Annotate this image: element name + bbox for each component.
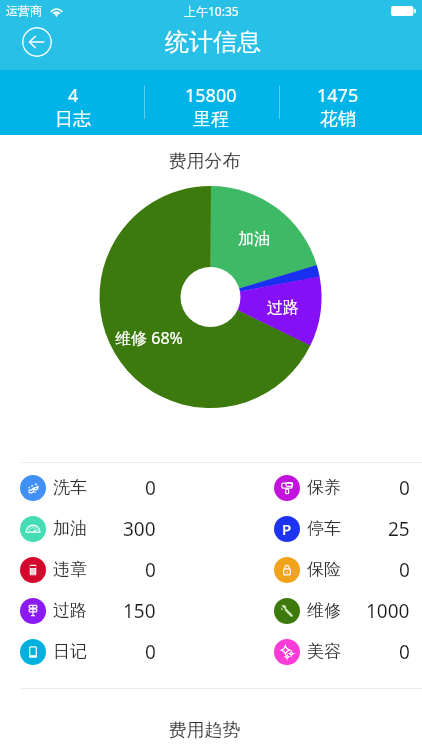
staticText: 运营商 xyxy=(6,3,42,18)
staticText: 0 xyxy=(399,475,410,501)
button[interactable]: Back xyxy=(22,27,52,57)
button[interactable]: 日记 xyxy=(0,631,211,672)
staticText: P xyxy=(282,519,292,539)
staticText: 15800 xyxy=(185,83,237,108)
staticText: 里程 xyxy=(193,108,229,131)
staticText: 过路 xyxy=(233,298,333,318)
staticText: 0 xyxy=(399,639,410,665)
button[interactable]: 维修 xyxy=(211,590,422,631)
staticText: 费用分布 xyxy=(0,150,409,173)
staticText: 1475 xyxy=(317,83,359,108)
staticText: 日记 xyxy=(53,641,87,662)
button[interactable]: 保养 xyxy=(211,467,422,508)
staticText: 0 xyxy=(399,557,410,583)
staticText: 加油 xyxy=(53,518,87,539)
staticText: 维修 xyxy=(307,600,341,621)
staticText: 过路 xyxy=(53,600,87,621)
staticText: 加油 xyxy=(204,229,304,249)
staticText: 统计信息 xyxy=(2,27,422,57)
staticText: 停车 xyxy=(307,518,341,539)
staticText: 4 xyxy=(68,83,79,108)
button[interactable]: 过路 xyxy=(0,590,211,631)
button[interactable]: 加油 xyxy=(0,508,211,549)
staticText: 维修 68% xyxy=(99,327,199,349)
button[interactable]: 15800 xyxy=(141,75,281,131)
staticText: 上午10:35 xyxy=(184,3,239,19)
staticText: 日志 xyxy=(55,108,91,131)
button[interactable]: P xyxy=(211,508,422,549)
staticText: 0 xyxy=(145,639,156,665)
staticText: 花销 xyxy=(320,108,356,131)
button[interactable]: 保险 xyxy=(211,549,422,590)
staticText: 保险 xyxy=(307,559,341,580)
button[interactable]: 4 xyxy=(0,75,140,131)
button[interactable]: 美容 xyxy=(211,631,422,672)
staticText: 300 xyxy=(123,516,156,542)
staticText: 0 xyxy=(145,557,156,583)
button[interactable]: 洗车 xyxy=(0,467,211,508)
staticText: 1000 xyxy=(366,598,410,624)
staticText: 0 xyxy=(145,475,156,501)
staticText: 洗车 xyxy=(53,477,87,498)
staticText: 费用趋势 xyxy=(0,719,409,742)
staticText: 150 xyxy=(123,598,156,624)
button[interactable]: 违章 xyxy=(0,549,211,590)
staticText: 保养 xyxy=(307,477,341,498)
staticText: 违章 xyxy=(53,559,87,580)
button[interactable]: 1475 xyxy=(282,75,422,131)
staticText: 美容 xyxy=(307,641,341,662)
staticText: 25 xyxy=(388,516,410,542)
